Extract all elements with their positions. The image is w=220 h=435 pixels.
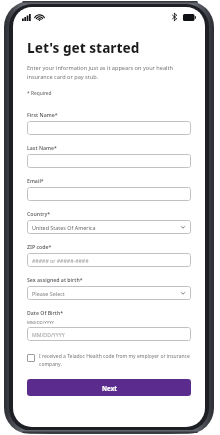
button[interactable] bbox=[27, 187, 191, 201]
staticText: Email* bbox=[27, 177, 44, 184]
staticText: MM/DD/YYYY bbox=[32, 331, 65, 338]
staticText: Sex assigned at birth* bbox=[27, 276, 83, 283]
staticText: I received a Teladoc Health code from my… bbox=[39, 353, 191, 367]
staticText: United States Of America bbox=[32, 224, 96, 231]
staticText: ZIP code* bbox=[27, 243, 52, 250]
button[interactable]: MM/DD/YYYY bbox=[27, 327, 191, 341]
staticText: Last Name* bbox=[27, 144, 57, 151]
other: Expand dropdown bbox=[180, 290, 186, 296]
staticText: Next bbox=[102, 384, 117, 392]
staticText: Please Select bbox=[32, 290, 65, 297]
other: Expand dropdown bbox=[180, 224, 186, 230]
staticText: Enter your information just as it appear… bbox=[27, 64, 191, 81]
button[interactable]: Please Select bbox=[27, 286, 191, 300]
button[interactable]: Next bbox=[27, 379, 191, 396]
button[interactable]: I received a Teladoc Health code from my… bbox=[27, 353, 191, 367]
button[interactable]: ##### or #####-#### bbox=[27, 253, 191, 267]
staticText: First Name* bbox=[27, 111, 58, 118]
staticText: * Required bbox=[27, 90, 52, 97]
staticText: Date Of Birth* bbox=[27, 309, 64, 316]
button[interactable] bbox=[27, 154, 191, 168]
staticText: ##### or #####-#### bbox=[32, 257, 89, 264]
button[interactable]: United States Of America bbox=[27, 220, 191, 234]
staticText: Let's get started bbox=[27, 39, 140, 57]
button[interactable] bbox=[27, 121, 191, 135]
staticText: Country* bbox=[27, 210, 51, 217]
staticText: MM/DD/YYYY bbox=[27, 319, 54, 325]
